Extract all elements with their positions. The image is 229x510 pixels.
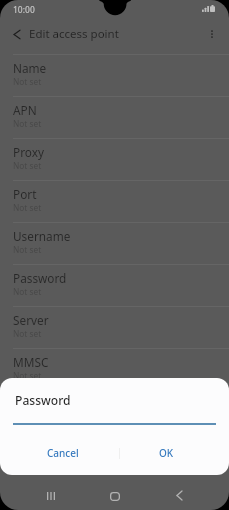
staticText: OK [159, 446, 174, 460]
staticText: Not set [13, 370, 42, 381]
button[interactable]: Recent apps [31, 477, 71, 510]
button[interactable]: Port [0, 180, 229, 222]
button[interactable]: Name [0, 54, 229, 96]
staticText: Not set [13, 118, 42, 129]
button[interactable]: Back [159, 477, 199, 510]
button[interactable]: OK [120, 438, 229, 468]
staticText: Proxy [13, 144, 44, 160]
button[interactable]: Navigate up [3, 20, 31, 48]
button[interactable]: Server [0, 306, 229, 348]
staticText: Not set [13, 244, 42, 255]
staticText: APN [13, 102, 37, 118]
button[interactable]: More options [197, 19, 227, 49]
button[interactable]: Cancel [0, 438, 119, 468]
staticText: Cancel [47, 446, 79, 460]
staticText: Not set [13, 160, 42, 171]
staticText: MMSC [13, 354, 49, 370]
staticText: Not set [13, 202, 42, 213]
staticText: Edit access point [29, 26, 119, 42]
staticText: Name [13, 60, 47, 76]
staticText: Not set [13, 76, 42, 87]
button[interactable]: MMSC [0, 348, 229, 390]
button[interactable]: MMS proxy [0, 390, 229, 432]
staticText: Not set [13, 286, 42, 297]
button[interactable]: Proxy [0, 138, 229, 180]
button[interactable]: Username [0, 222, 229, 264]
button[interactable]: Password [0, 264, 229, 306]
staticText: Password [13, 270, 67, 286]
staticText: Port [13, 186, 37, 202]
staticText: Password [15, 392, 71, 408]
staticText: Not set [13, 328, 42, 339]
staticText: 10:00 [13, 4, 35, 16]
staticText: Server [13, 312, 49, 328]
button[interactable]: APN [0, 96, 229, 138]
staticText: MMS proxy [13, 396, 75, 412]
staticText: Username [13, 228, 71, 244]
button[interactable]: Home [95, 478, 135, 510]
